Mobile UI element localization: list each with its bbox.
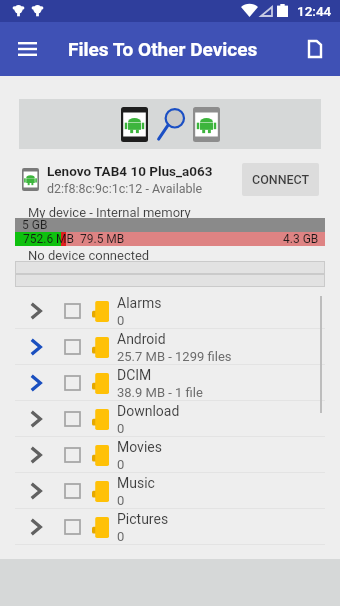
staticText: 79.5 MB xyxy=(80,232,125,246)
button[interactable]: Lenovo TAB4 10 Plus_a063 xyxy=(0,156,340,202)
button[interactable]: Pictures xyxy=(0,509,340,545)
staticText: Alarms xyxy=(117,295,162,311)
staticText: Music xyxy=(117,475,155,491)
staticText: DCIM xyxy=(117,367,152,383)
staticText: Download xyxy=(117,403,180,419)
button[interactable]: Music xyxy=(0,473,340,509)
button[interactable]: Download xyxy=(0,401,340,437)
staticText: No device connected xyxy=(28,248,150,263)
button[interactable]: Android xyxy=(0,329,340,365)
staticText: 4.3 GB xyxy=(283,232,319,246)
staticText: CONNECT xyxy=(252,172,310,187)
button[interactable]: New file xyxy=(296,30,334,68)
button[interactable]: CONNECT xyxy=(242,163,319,196)
staticText: 0 xyxy=(117,493,125,508)
staticText: Files To Other Devices xyxy=(68,38,258,60)
staticText: 25.7 MB - 1299 files xyxy=(117,349,232,364)
staticText: 0 xyxy=(117,313,125,328)
staticText: Pictures xyxy=(117,511,169,527)
staticText: My device - Internal memory xyxy=(28,205,191,220)
staticText: Android xyxy=(117,331,166,347)
button[interactable]: Alarms xyxy=(0,293,340,329)
staticText: d2:f8:8c:9c:1c:12 - Available xyxy=(47,181,203,196)
staticText: 12:44 xyxy=(297,3,332,19)
button[interactable]: Menu xyxy=(8,30,46,68)
button[interactable]: DCIM xyxy=(0,365,340,401)
button[interactable]: Movies xyxy=(0,437,340,473)
staticText: 38.9 MB - 1 file xyxy=(117,385,203,400)
staticText: 5 GB xyxy=(22,218,48,232)
staticText: 0 xyxy=(117,529,125,544)
staticText: Lenovo TAB4 10 Plus_a063 xyxy=(47,163,213,179)
staticText: 0 xyxy=(117,457,125,472)
staticText: Movies xyxy=(117,439,162,455)
staticText: 0 xyxy=(117,421,125,436)
button[interactable]: Scan for devices xyxy=(19,99,321,149)
staticText: 752.6 MB xyxy=(23,232,75,246)
